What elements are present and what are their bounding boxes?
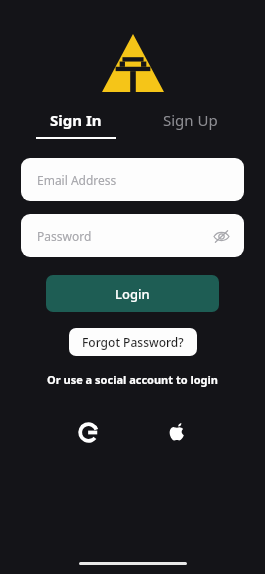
staticText: Password — [37, 228, 92, 244]
button[interactable]: Sign Up — [140, 110, 240, 139]
button[interactable]: Show password — [208, 223, 234, 249]
button[interactable]: Sign in with Google — [69, 413, 107, 451]
staticText: Or use a social account to login — [47, 372, 218, 387]
button[interactable]: Password — [21, 214, 244, 257]
staticText: Email Address — [37, 172, 117, 188]
button[interactable]: Email Address — [21, 158, 244, 201]
button[interactable]: Login — [46, 275, 219, 312]
button[interactable]: Sign in with Apple — [158, 413, 196, 451]
button[interactable]: Forgot Password? — [69, 328, 197, 356]
staticText: Forgot Password? — [82, 334, 184, 350]
staticText: Login — [115, 285, 150, 303]
staticText: Sign Up — [163, 110, 218, 130]
staticText: Sign In — [50, 110, 102, 130]
button[interactable]: Sign In — [26, 110, 126, 139]
